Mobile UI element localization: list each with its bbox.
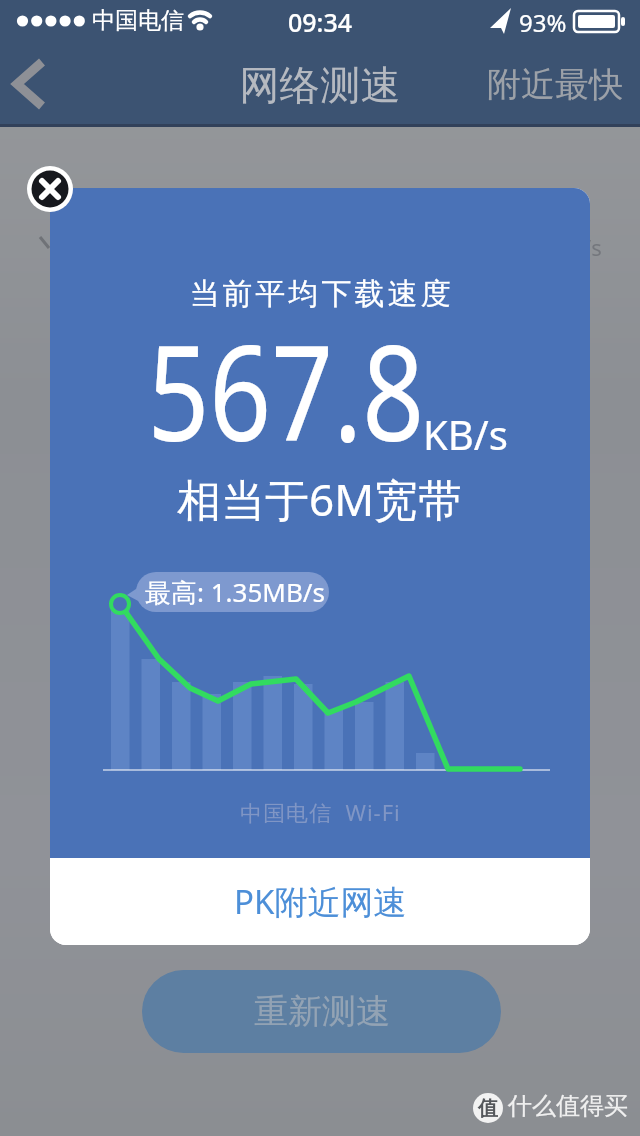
staticText: 重新测速: [254, 990, 390, 1033]
staticText: 567.8: [147, 300, 425, 480]
staticText: /s: [583, 232, 602, 262]
staticText: 中国电信 Wi-Fi: [240, 797, 401, 827]
staticText: 当前平均下载速度: [188, 275, 452, 313]
staticText: 值: [478, 1096, 498, 1121]
staticText: PK附近网速: [234, 879, 407, 924]
staticText: 最高: 1.35MB/s: [145, 574, 325, 610]
staticText: 93%: [519, 6, 567, 39]
button[interactable]: 网络测速: [0, 42, 640, 127]
staticText: 相当于6M宽带: [177, 469, 463, 529]
button[interactable]: [0, 42, 70, 127]
staticText: 什么值得买: [508, 1091, 628, 1121]
staticText: 09:34: [288, 5, 353, 39]
staticText: KB/s: [423, 407, 508, 461]
staticText: 中国电信: [92, 6, 184, 35]
staticText: 附近最快: [487, 63, 623, 106]
button[interactable]: [26, 165, 74, 213]
button[interactable]: PK附近网速: [50, 858, 590, 945]
button[interactable]: 重新测速: [142, 970, 501, 1053]
button[interactable]: 附近最快: [470, 42, 640, 127]
staticText: 网络测速: [239, 60, 401, 110]
